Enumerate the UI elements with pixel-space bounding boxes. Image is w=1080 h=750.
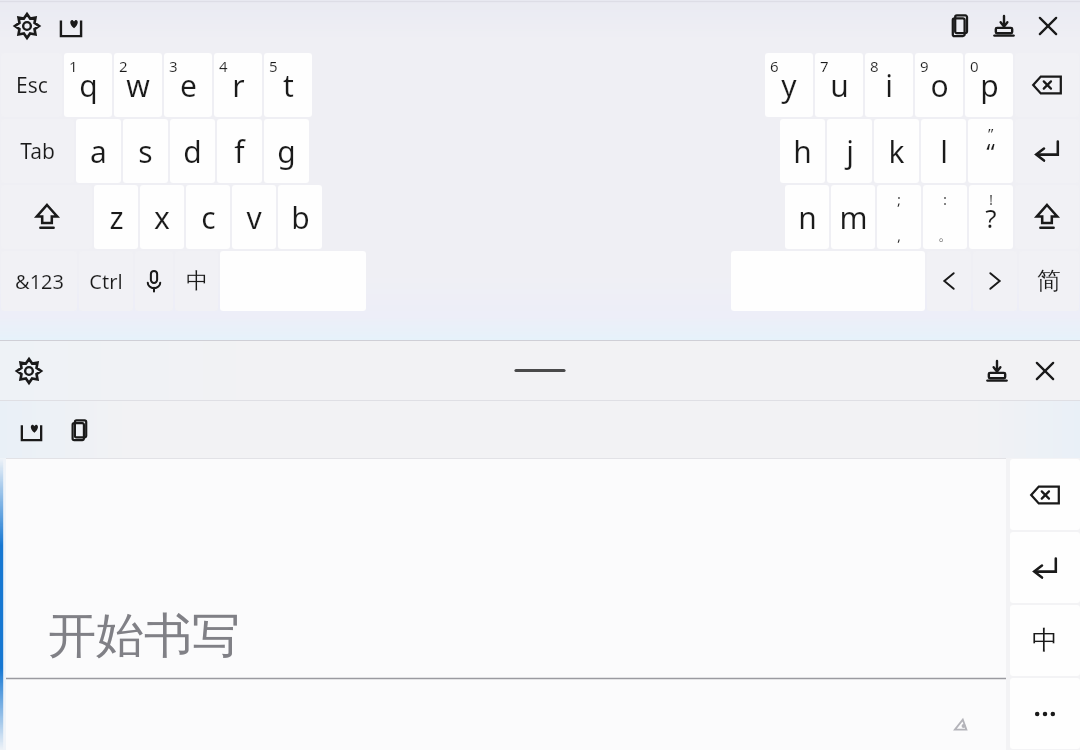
staticText: 2 bbox=[119, 56, 128, 76]
button[interactable]: Tab bbox=[1, 119, 74, 183]
button[interactable]: Settings bbox=[12, 346, 46, 396]
staticText: Esc bbox=[16, 71, 48, 100]
button[interactable]: Ctrl bbox=[79, 251, 133, 311]
button[interactable]: u bbox=[815, 53, 863, 117]
button[interactable]: Clipboard bbox=[62, 406, 96, 454]
button[interactable]: l bbox=[921, 119, 966, 183]
staticText: k bbox=[888, 131, 905, 172]
button[interactable]: a bbox=[76, 119, 121, 183]
button[interactable]: f bbox=[217, 119, 262, 183]
staticText: Tab bbox=[20, 137, 55, 166]
staticText: y bbox=[781, 65, 797, 106]
button[interactable]: Close panel bbox=[1024, 346, 1066, 396]
button[interactable]: w bbox=[114, 53, 162, 117]
button[interactable]: Shift bbox=[1015, 185, 1079, 249]
button[interactable]: Previous candidate bbox=[927, 251, 971, 311]
button[interactable]: b bbox=[278, 185, 322, 249]
button[interactable]: t bbox=[264, 53, 312, 117]
button[interactable]: m bbox=[831, 185, 875, 249]
button[interactable]: Handwriting area bbox=[6, 458, 1006, 750]
button[interactable]: z bbox=[94, 185, 138, 249]
staticText: q bbox=[79, 65, 98, 106]
button[interactable]: g bbox=[264, 119, 309, 183]
staticText: h bbox=[793, 131, 812, 172]
button[interactable]: Enter bbox=[1015, 119, 1079, 183]
staticText: f bbox=[234, 131, 245, 172]
button[interactable]: Shift bbox=[1, 185, 92, 249]
button[interactable]: Settings bbox=[10, 3, 44, 49]
button[interactable]: Enter bbox=[1010, 532, 1080, 603]
button[interactable]: 中 bbox=[175, 251, 218, 311]
button[interactable]: s bbox=[123, 119, 168, 183]
staticText: Ctrl bbox=[89, 268, 123, 295]
staticText: i bbox=[885, 65, 893, 106]
button[interactable]: k bbox=[874, 119, 919, 183]
staticText: e bbox=[180, 65, 197, 106]
button[interactable]: Favorites bbox=[54, 3, 88, 49]
button[interactable]: “ bbox=[968, 119, 1013, 183]
button[interactable]: x bbox=[140, 185, 184, 249]
button[interactable]: More options bbox=[1010, 678, 1080, 749]
staticText: a bbox=[90, 131, 107, 172]
staticText: 。 bbox=[938, 226, 953, 245]
button[interactable]: Backspace bbox=[1015, 53, 1079, 117]
button[interactable]: d bbox=[170, 119, 215, 183]
button[interactable]: h bbox=[780, 119, 825, 183]
staticText: 中 bbox=[186, 267, 208, 295]
staticText: 0 bbox=[970, 56, 979, 76]
staticText: r bbox=[232, 65, 245, 106]
button[interactable]: n bbox=[785, 185, 829, 249]
button[interactable]: y bbox=[765, 53, 813, 117]
button[interactable]: Dock panel bbox=[976, 346, 1018, 396]
staticText: n bbox=[798, 197, 817, 238]
button[interactable]: Esc bbox=[1, 53, 62, 117]
staticText: g bbox=[277, 131, 296, 172]
staticText: : bbox=[943, 189, 948, 209]
button[interactable]: Dock keyboard bbox=[984, 3, 1024, 49]
staticText: &123 bbox=[15, 268, 64, 295]
button[interactable]: ? bbox=[969, 185, 1013, 249]
staticText: z bbox=[109, 197, 124, 238]
button[interactable]: e bbox=[164, 53, 212, 117]
button[interactable]: 简 bbox=[1019, 251, 1079, 311]
button[interactable]: Pen settings bbox=[950, 714, 972, 736]
button[interactable]: p bbox=[965, 53, 1013, 117]
staticText: o bbox=[930, 65, 949, 106]
button[interactable]: : bbox=[923, 185, 967, 249]
staticText: p bbox=[980, 65, 999, 106]
staticText: ” bbox=[988, 123, 994, 143]
button[interactable]: q bbox=[64, 53, 112, 117]
button[interactable]: Favorites bbox=[14, 406, 48, 454]
button[interactable]: j bbox=[827, 119, 872, 183]
staticText: v bbox=[246, 197, 262, 238]
button[interactable]: i bbox=[865, 53, 913, 117]
staticText: x bbox=[154, 197, 170, 238]
button[interactable]: Voice input bbox=[135, 251, 173, 311]
button[interactable]: o bbox=[915, 53, 963, 117]
staticText: j bbox=[846, 131, 854, 172]
staticText: l bbox=[940, 131, 948, 172]
button[interactable]: Next candidate bbox=[973, 251, 1017, 311]
button[interactable]: Close keyboard bbox=[1028, 3, 1068, 49]
staticText: c bbox=[201, 197, 216, 238]
staticText: ! bbox=[989, 189, 994, 209]
staticText: 中 bbox=[1032, 624, 1058, 657]
button[interactable]: &123 bbox=[1, 251, 77, 311]
button[interactable]: v bbox=[232, 185, 276, 249]
button[interactable]: Clipboard bbox=[940, 3, 980, 49]
staticText: 5 bbox=[269, 56, 278, 76]
staticText: , bbox=[897, 225, 902, 245]
staticText: 开始书写 bbox=[48, 606, 240, 666]
staticText: 4 bbox=[219, 56, 228, 76]
staticText: 简 bbox=[1037, 266, 1061, 296]
button[interactable]: c bbox=[186, 185, 230, 249]
button[interactable]: r bbox=[214, 53, 262, 117]
staticText: t bbox=[283, 65, 294, 106]
staticText: 3 bbox=[169, 56, 178, 76]
button[interactable]: ; bbox=[877, 185, 921, 249]
button[interactable]: Backspace bbox=[1010, 459, 1080, 530]
staticText: 9 bbox=[920, 56, 929, 76]
button[interactable]: 中 bbox=[1010, 605, 1080, 676]
